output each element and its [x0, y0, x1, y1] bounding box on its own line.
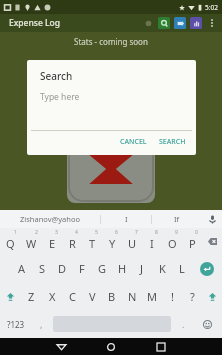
button[interactable]: V: [82, 282, 102, 310]
staticText: G: [98, 261, 107, 276]
button[interactable]: I: [101, 210, 151, 228]
button[interactable]: Home: [86, 338, 136, 355]
button[interactable]: I: [142, 228, 162, 255]
staticText: SEARCH: [159, 137, 186, 147]
button[interactable]: G: [92, 255, 112, 282]
staticText: R: [69, 236, 76, 251]
staticText: 9: [175, 229, 178, 236]
staticText: W: [26, 236, 37, 251]
staticText: D: [58, 261, 67, 276]
button[interactable]: Stats: [190, 17, 202, 29]
staticText: If: [174, 214, 180, 224]
staticText: B: [108, 289, 116, 304]
button[interactable]: Shift: [202, 282, 222, 310]
button[interactable]: A: [11, 255, 32, 282]
staticText: I: [150, 236, 154, 251]
staticText: 8: [155, 229, 158, 236]
button[interactable]: M: [142, 282, 162, 310]
staticText: F: [79, 261, 85, 276]
staticText: I: [125, 214, 128, 224]
staticText: M: [147, 289, 157, 304]
button[interactable]: Export: [174, 17, 186, 29]
staticText: Type here: [40, 91, 80, 103]
staticText: O: [168, 236, 177, 251]
staticText: K: [159, 261, 166, 276]
button[interactable]: E: [42, 228, 62, 255]
button[interactable]: D: [52, 255, 72, 282]
button[interactable]: Voice input: [202, 210, 222, 228]
staticText: 2: [35, 229, 38, 236]
button[interactable]: P: [182, 228, 202, 255]
staticText: E: [49, 236, 56, 251]
button[interactable]: N: [122, 282, 142, 310]
staticText: 1: [14, 229, 17, 236]
staticText: Q: [6, 236, 15, 251]
staticText: Search: [40, 69, 73, 83]
staticText: ?123: [7, 319, 25, 330]
button[interactable]: X: [42, 282, 62, 310]
staticText: !: [171, 289, 174, 304]
staticText: U: [128, 236, 137, 251]
button[interactable]: ?: [182, 282, 202, 310]
staticText: L: [179, 261, 185, 276]
button[interactable]: ?123: [0, 310, 31, 338]
staticText: A: [18, 261, 26, 276]
button[interactable]: L: [172, 255, 192, 282]
staticText: Y: [109, 236, 116, 251]
button[interactable]: K: [152, 255, 172, 282]
button[interactable]: More options: [206, 17, 218, 29]
button[interactable]: Zishanov@yahoo: [0, 210, 100, 228]
staticText: H: [118, 261, 127, 276]
button[interactable]: O: [162, 228, 182, 255]
staticText: 6: [115, 229, 118, 236]
button[interactable]: B: [102, 282, 122, 310]
button[interactable]: Back: [36, 338, 86, 355]
button[interactable]: T: [82, 228, 102, 255]
button[interactable]: R: [62, 228, 82, 255]
staticText: X: [49, 289, 56, 304]
button[interactable]: CANCEL: [114, 133, 153, 151]
button[interactable]: Q: [0, 228, 21, 255]
button[interactable]: Emoji: [193, 310, 222, 338]
staticText: J: [140, 261, 144, 276]
staticText: Z: [28, 289, 35, 304]
staticText: CANCEL: [120, 137, 147, 147]
staticText: .: [182, 318, 185, 330]
button[interactable]: Recent apps: [136, 338, 186, 355]
staticText: V: [89, 289, 96, 304]
staticText: 3: [55, 229, 58, 236]
button[interactable]: !: [162, 282, 182, 310]
button[interactable]: Shift: [0, 282, 21, 310]
button[interactable]: J: [132, 255, 152, 282]
button[interactable]: Backspace: [202, 228, 222, 255]
staticText: 4: [75, 229, 78, 236]
staticText: 5: [95, 229, 98, 236]
button[interactable]: Z: [21, 282, 42, 310]
button[interactable]: SEARCH: [153, 133, 196, 151]
staticText: ,: [40, 318, 43, 330]
button[interactable]: Search: [158, 17, 170, 29]
staticText: T: [89, 236, 96, 251]
button[interactable]: W: [21, 228, 42, 255]
staticText: S: [39, 261, 46, 276]
staticText: ?: [190, 289, 195, 304]
staticText: 7: [135, 229, 138, 236]
staticText: Zishanov@yahoo: [20, 214, 80, 224]
staticText: P: [189, 236, 196, 251]
button[interactable]: ,: [31, 310, 51, 338]
button[interactable]: C: [62, 282, 82, 310]
staticText: Stats - coming soon: [74, 36, 148, 47]
button[interactable]: Filter: [142, 17, 154, 29]
button[interactable]: Y: [102, 228, 122, 255]
button[interactable]: Enter: [192, 255, 222, 282]
staticText: C: [69, 289, 76, 304]
button[interactable]: U: [122, 228, 142, 255]
button[interactable]: F: [72, 255, 92, 282]
staticText: 0: [195, 229, 198, 236]
button[interactable]: S: [32, 255, 52, 282]
button[interactable]: If: [152, 210, 202, 228]
button[interactable]: H: [112, 255, 132, 282]
staticText: 5:02: [205, 3, 218, 12]
